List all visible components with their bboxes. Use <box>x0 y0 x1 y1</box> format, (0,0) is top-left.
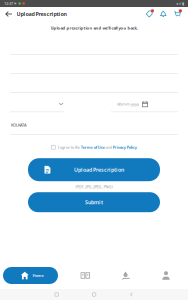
staticText: Terms of Use <box>81 144 105 150</box>
button[interactable]: Medicines <box>72 267 98 284</box>
staticText: and <box>105 144 113 150</box>
button[interactable]: Offers <box>144 7 154 21</box>
button[interactable]: Home <box>89 290 99 299</box>
staticText: KOLKATA <box>11 122 27 127</box>
staticText: Privacy Policy <box>113 144 137 150</box>
button[interactable]: Back <box>127 289 136 300</box>
staticText: 12:37 <box>4 1 13 6</box>
staticText: Upload prescription and we'll call you b… <box>50 25 137 31</box>
button[interactable]: Notifications <box>158 7 168 21</box>
button[interactable]: Upload Prescription <box>0 7 71 21</box>
staticText: I agree to the <box>58 144 81 150</box>
button[interactable]: Lab Tests <box>113 267 139 284</box>
staticText: dd-mm-yyyy <box>117 101 139 107</box>
button[interactable]: Cart <box>172 7 182 21</box>
button[interactable]: Submit <box>28 192 160 212</box>
staticText: Upload Prescription <box>17 10 67 18</box>
button[interactable]: Terms of Use <box>81 144 105 150</box>
button[interactable]: Home <box>3 267 58 284</box>
button[interactable]: Recents <box>52 290 61 299</box>
staticText: Upload Prescription <box>74 166 124 173</box>
button[interactable]: Upload Prescription <box>28 158 160 181</box>
staticText: ◂ ıl ▮ <box>176 1 184 6</box>
button[interactable] <box>10 93 64 112</box>
button[interactable]: dd-mm-yyyy <box>111 93 178 112</box>
button[interactable]: Profile <box>153 267 179 284</box>
staticText: Home <box>32 273 43 278</box>
staticText: (PDF, JPG, JPEG, PNG) <box>75 184 112 189</box>
button[interactable]: Privacy Policy <box>113 144 137 150</box>
staticText: Submit <box>85 199 103 206</box>
